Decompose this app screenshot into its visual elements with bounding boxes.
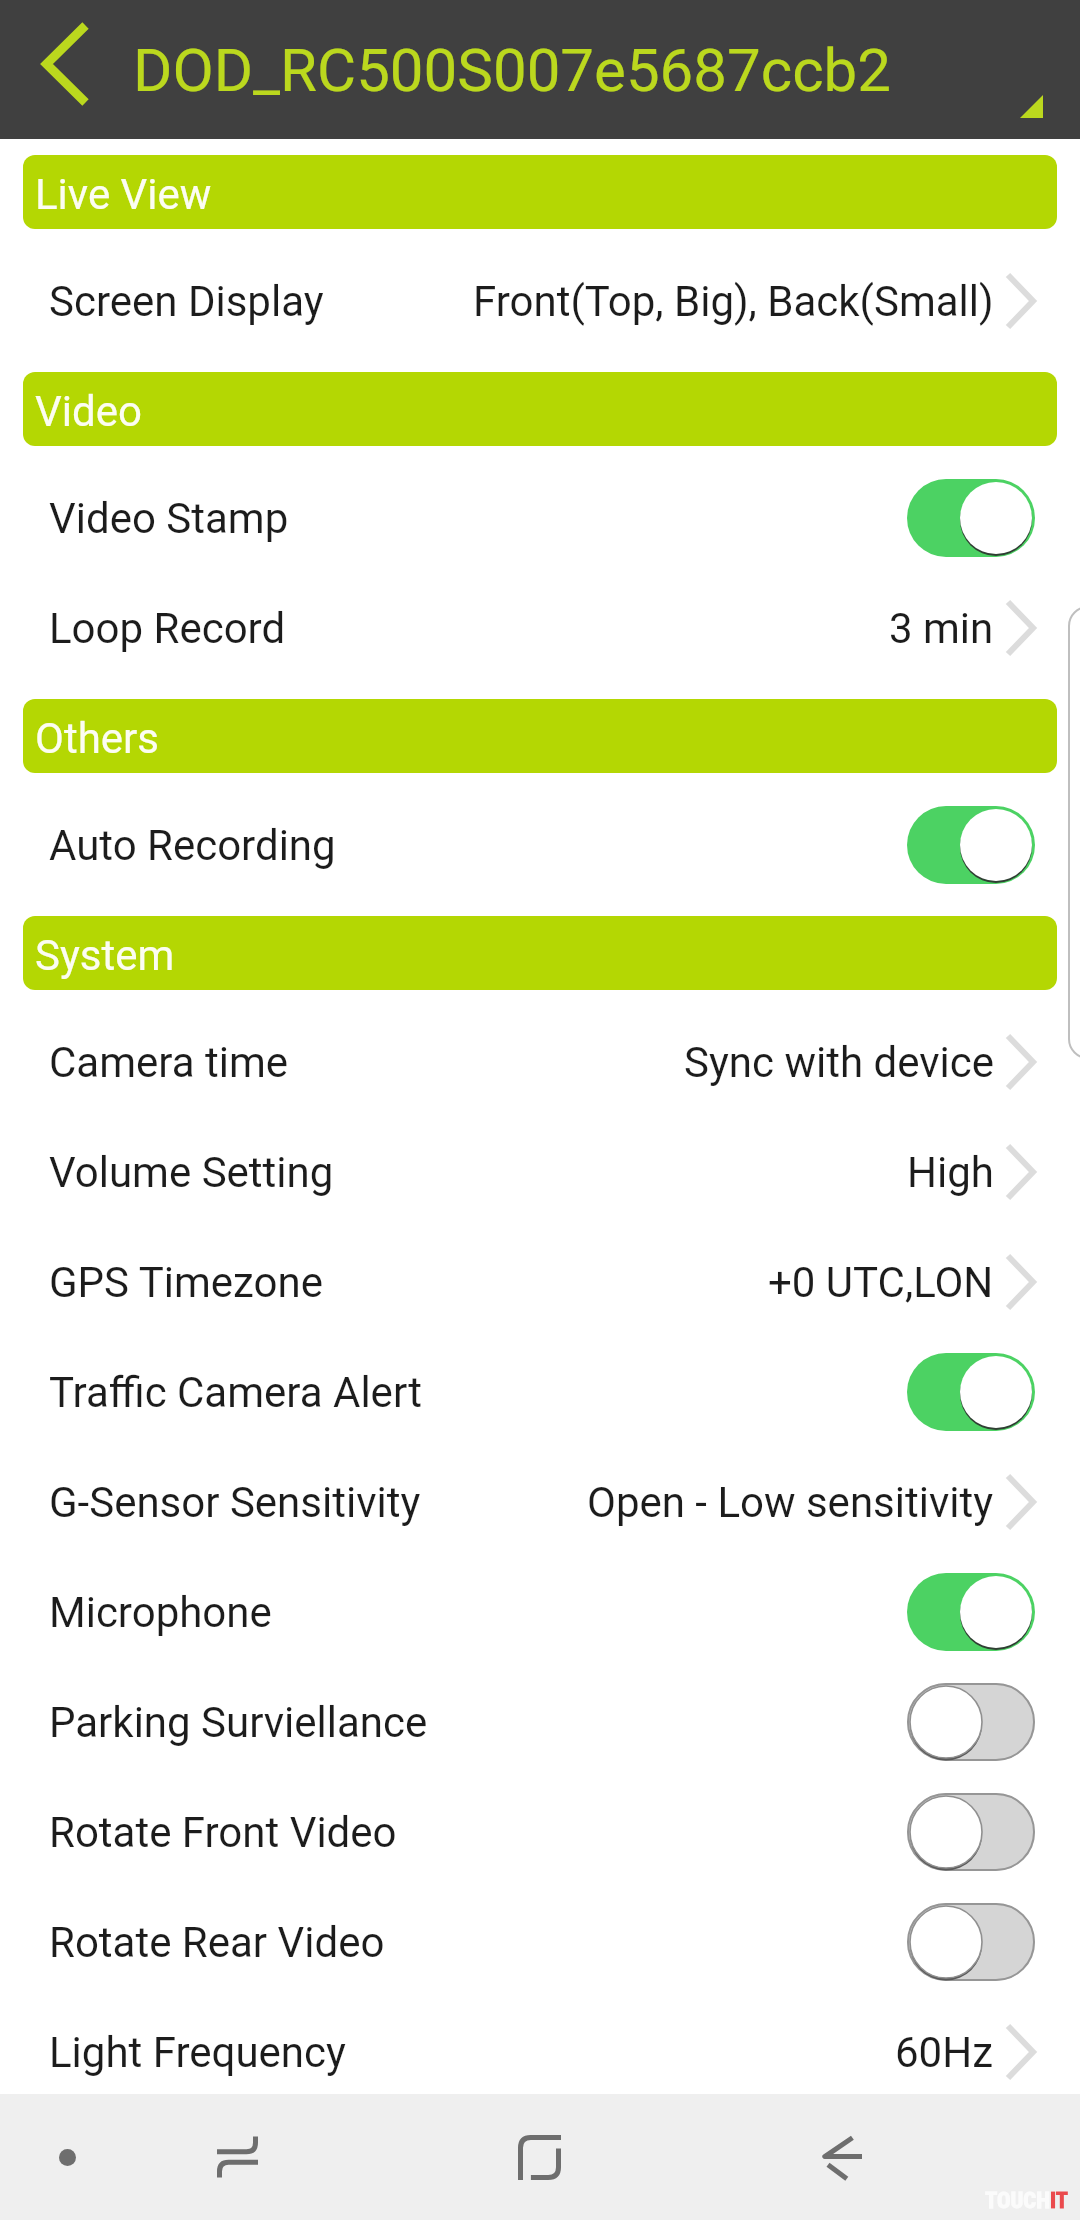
staticText: Loop Record xyxy=(49,604,286,653)
staticText: Open - Low sensitivity xyxy=(587,1478,994,1527)
staticText: Screen Display xyxy=(49,277,324,326)
button[interactable]: Rotate Front Video xyxy=(0,1777,1080,1887)
button[interactable]: GPS Timezone xyxy=(0,1227,1080,1337)
staticText: System xyxy=(35,931,175,980)
staticText: Rotate Front Video xyxy=(49,1808,397,1857)
staticText: Auto Recording xyxy=(49,821,336,870)
button[interactable]: Rotate Rear Video xyxy=(0,1887,1080,1997)
button[interactable]: Recent apps xyxy=(182,2102,292,2212)
button[interactable]: Live View xyxy=(23,155,1057,229)
button[interactable]: Back xyxy=(787,2102,897,2212)
button[interactable]: Volume Setting xyxy=(0,1117,1080,1227)
button[interactable]: Home xyxy=(484,2102,594,2212)
button[interactable]: Traffic Camera Alert xyxy=(0,1337,1080,1447)
button[interactable]: Video xyxy=(23,372,1057,446)
staticText: Front(Top, Big), Back(Small) xyxy=(473,277,994,326)
staticText: Parking Surviellance xyxy=(49,1698,428,1747)
staticText: Sync with device xyxy=(684,1038,994,1087)
staticText: IT xyxy=(1050,2187,1068,2213)
staticText: DOD_RC500S007e5687ccb2 xyxy=(133,35,891,105)
staticText: GPS Timezone xyxy=(49,1258,323,1307)
button[interactable]: Auto Recording xyxy=(0,790,1080,900)
button[interactable]: Others xyxy=(23,699,1057,773)
button[interactable]: Back xyxy=(17,10,111,128)
staticText: Video xyxy=(35,387,142,436)
staticText: Camera time xyxy=(49,1038,289,1087)
button[interactable]: Loop Record xyxy=(0,573,1080,683)
button[interactable]: Camera time xyxy=(0,1007,1080,1117)
staticText: Rotate Rear Video xyxy=(49,1918,385,1967)
button[interactable]: Microphone xyxy=(0,1557,1080,1667)
staticText: Light Frequency xyxy=(49,2028,346,2077)
staticText: 3 min xyxy=(889,604,994,653)
staticText: Live View xyxy=(35,170,212,219)
staticText: Volume Setting xyxy=(49,1148,334,1197)
button[interactable]: Screen Display xyxy=(0,246,1080,356)
staticText: Microphone xyxy=(49,1588,272,1637)
button[interactable]: G-Sensor Sensitivity xyxy=(0,1447,1080,1557)
button[interactable]: Parking Surviellance xyxy=(0,1667,1080,1777)
staticText: Traffic Camera Alert xyxy=(49,1368,422,1417)
staticText: G-Sensor Sensitivity xyxy=(49,1478,421,1527)
staticText: High xyxy=(907,1148,994,1197)
button[interactable]: Light Frequency xyxy=(0,1997,1080,2107)
button[interactable]: Video Stamp xyxy=(0,463,1080,573)
button[interactable]: System xyxy=(23,916,1057,990)
staticText: 60Hz xyxy=(895,2028,994,2077)
staticText: Others xyxy=(35,714,159,763)
staticText: TOUCH xyxy=(985,2187,1050,2213)
button[interactable]: Menu xyxy=(17,2107,117,2207)
staticText: Video Stamp xyxy=(49,494,289,543)
staticText: +0 UTC,LON xyxy=(768,1258,994,1307)
